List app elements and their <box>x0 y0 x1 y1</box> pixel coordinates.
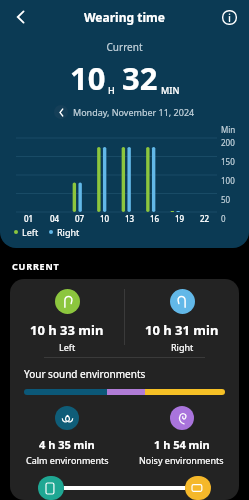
staticText: 04 <box>50 213 60 224</box>
staticText: 10 <box>100 213 110 224</box>
staticText: 13 <box>125 213 135 224</box>
staticText: 19 <box>175 213 185 224</box>
staticText: Calm environments <box>26 454 109 466</box>
staticText: H <box>108 84 115 96</box>
staticText: Left <box>22 226 39 238</box>
staticText: 22 <box>200 213 210 224</box>
staticText: Min <box>221 124 245 135</box>
staticText: 10 h 31 min <box>145 321 219 339</box>
button[interactable]: 1 h 54 min <box>124 406 239 466</box>
staticText: 16 <box>150 213 160 224</box>
button[interactable]: 10 h 31 min <box>125 289 239 353</box>
button[interactable]: 10 h 33 min <box>10 289 124 353</box>
staticText: 50 <box>221 194 231 205</box>
staticText: Noisy environments <box>139 454 224 466</box>
button[interactable]: 4 h 35 min <box>10 406 124 466</box>
staticText: 100 <box>221 175 235 186</box>
staticText: Wearing time <box>84 9 165 25</box>
staticText: 10 h 33 min <box>30 321 104 339</box>
staticText: 0 <box>221 213 226 224</box>
staticText: Your sound environments <box>24 367 146 381</box>
staticText: 1 h 54 min <box>154 437 210 452</box>
staticText: 200 <box>221 137 235 148</box>
staticText: 4 h 35 min <box>39 437 95 452</box>
staticText: CURRENT <box>12 260 60 272</box>
staticText: 150 <box>221 156 235 167</box>
staticText: Current <box>0 40 249 54</box>
staticText: 32 <box>122 57 158 99</box>
staticText: MIN <box>161 84 180 96</box>
button[interactable]: Information <box>215 3 243 31</box>
staticText: Left <box>59 341 76 353</box>
button[interactable]: Monday, November 11, 2024 <box>0 105 249 119</box>
staticText: Right <box>57 226 80 238</box>
staticText: 01 <box>24 213 34 224</box>
staticText: 07 <box>75 213 85 224</box>
button[interactable]: Back <box>6 2 36 32</box>
staticText: 10 <box>70 57 106 99</box>
staticText: Right <box>171 341 194 353</box>
staticText: Monday, November 11, 2024 <box>73 106 195 118</box>
